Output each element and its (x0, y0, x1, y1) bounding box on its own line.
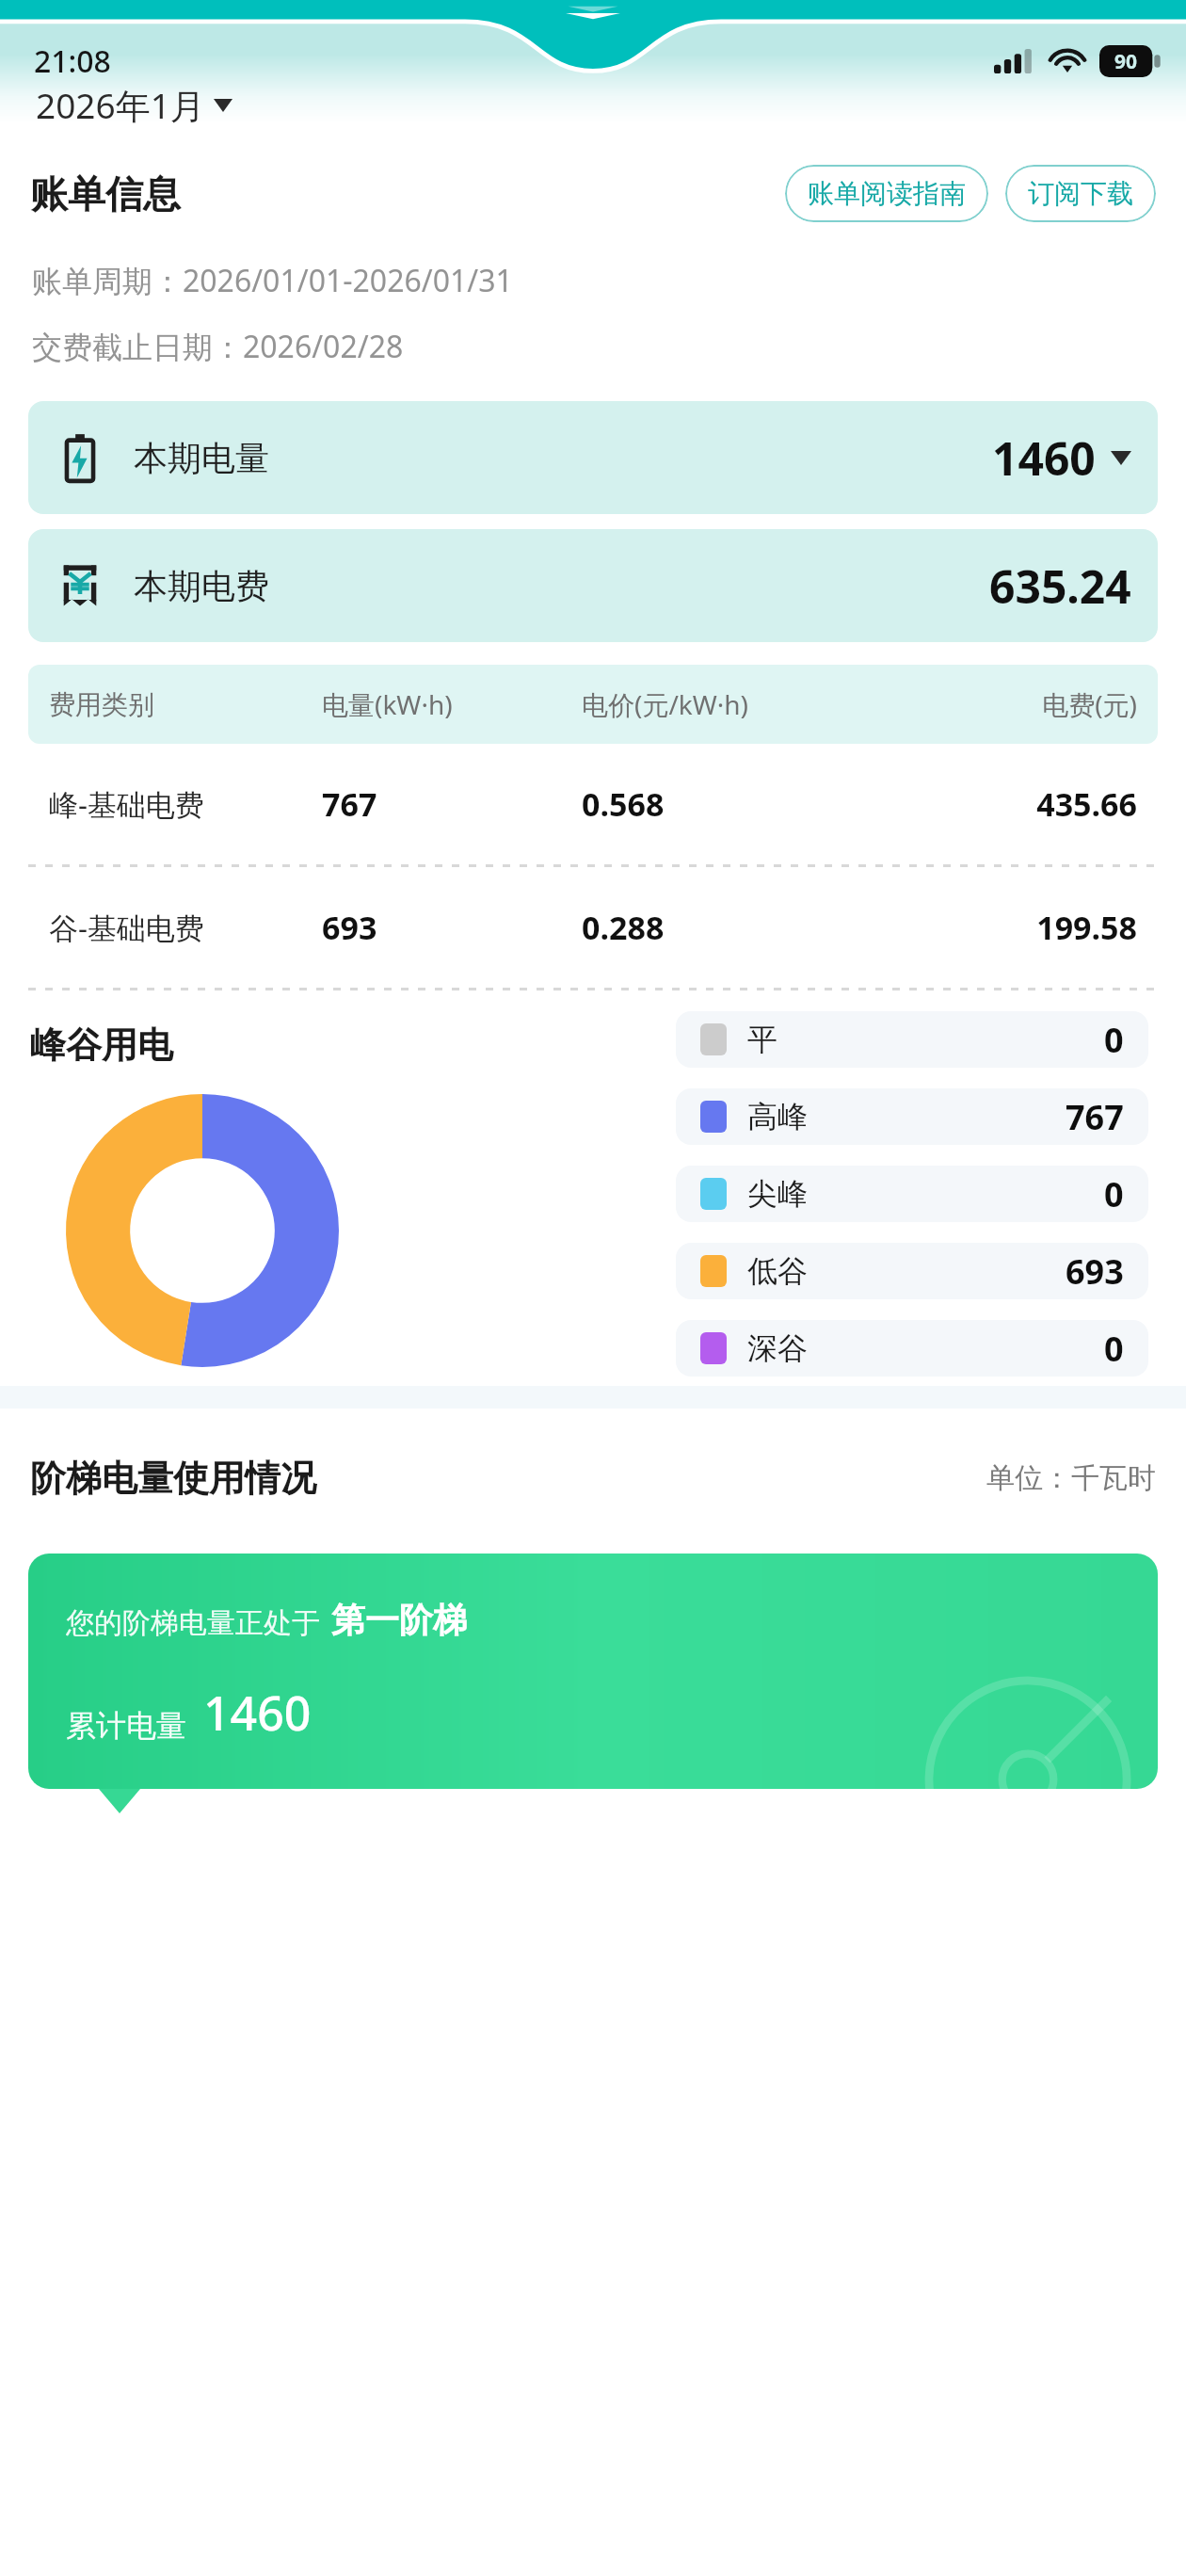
staticText: 您的阶梯电量正处于 (66, 1605, 320, 1641)
staticText: 199.58 (901, 906, 1137, 949)
staticText: 尖峰 (747, 1175, 808, 1213)
staticText: 峰-基础电费 (49, 784, 322, 824)
staticText: 电量(kW·h) (322, 686, 582, 722)
staticText: 账单阅读指南 (808, 177, 966, 210)
staticText: 交费截止日期：2026/02/28 (32, 326, 404, 367)
staticText: 0 (1104, 1017, 1124, 1063)
staticText: 21:08 (34, 40, 111, 82)
staticText: 435.66 (901, 782, 1137, 826)
staticText: 693 (322, 906, 582, 949)
staticText: 693 (1066, 1248, 1124, 1295)
staticText: 第一阶梯 (331, 1599, 467, 1641)
button[interactable]: 2026年1月 (30, 77, 238, 133)
staticText: 峰谷用电 (30, 1022, 173, 1068)
staticText: 费用类别 (49, 688, 322, 721)
staticText: 低谷 (747, 1252, 808, 1290)
staticText: 电价(元/kW·h) (582, 686, 901, 722)
staticText: 0.568 (582, 782, 901, 826)
staticText: 90 (1114, 48, 1138, 75)
staticText: 635.24 (989, 555, 1131, 617)
button[interactable]: 深谷 (676, 1320, 1148, 1377)
staticText: 本期电量 (134, 437, 269, 479)
staticText: 767 (322, 782, 582, 826)
button[interactable]: 低谷 (676, 1243, 1148, 1299)
staticText: 账单信息 (30, 170, 181, 217)
button[interactable]: 本期电费 (28, 529, 1158, 642)
button[interactable]: 平 (676, 1011, 1148, 1068)
staticText: 1460 (203, 1681, 312, 1745)
staticText: 单位：千瓦时 (986, 1460, 1156, 1496)
staticText: 2026年1月 (36, 81, 205, 129)
staticText: 高峰 (747, 1098, 808, 1135)
staticText: 阶梯电量使用情况 (30, 1456, 316, 1501)
staticText: 1460 (992, 427, 1096, 489)
button[interactable]: 本期电量 (28, 401, 1158, 514)
staticText: 账单周期：2026/01/01-2026/01/31 (32, 260, 513, 301)
staticText: 深谷 (747, 1329, 808, 1367)
staticText: 本期电费 (134, 565, 269, 607)
button[interactable]: 尖峰 (676, 1166, 1148, 1222)
button[interactable]: 账单阅读指南 (785, 165, 988, 222)
staticText: 累计电量 (66, 1707, 186, 1745)
staticText: 0 (1104, 1326, 1124, 1372)
staticText: 谷-基础电费 (49, 908, 322, 947)
button[interactable]: 订阅下载 (1005, 165, 1156, 222)
staticText: 电费(元) (901, 686, 1137, 722)
staticText: 0 (1104, 1171, 1124, 1217)
button[interactable]: 您的阶梯电量正处于 (28, 1554, 1158, 1789)
staticText: 0.288 (582, 906, 901, 949)
staticText: 767 (1066, 1094, 1124, 1140)
staticText: 平 (747, 1021, 777, 1058)
button[interactable]: 高峰 (676, 1088, 1148, 1145)
staticText: 订阅下载 (1028, 177, 1133, 210)
